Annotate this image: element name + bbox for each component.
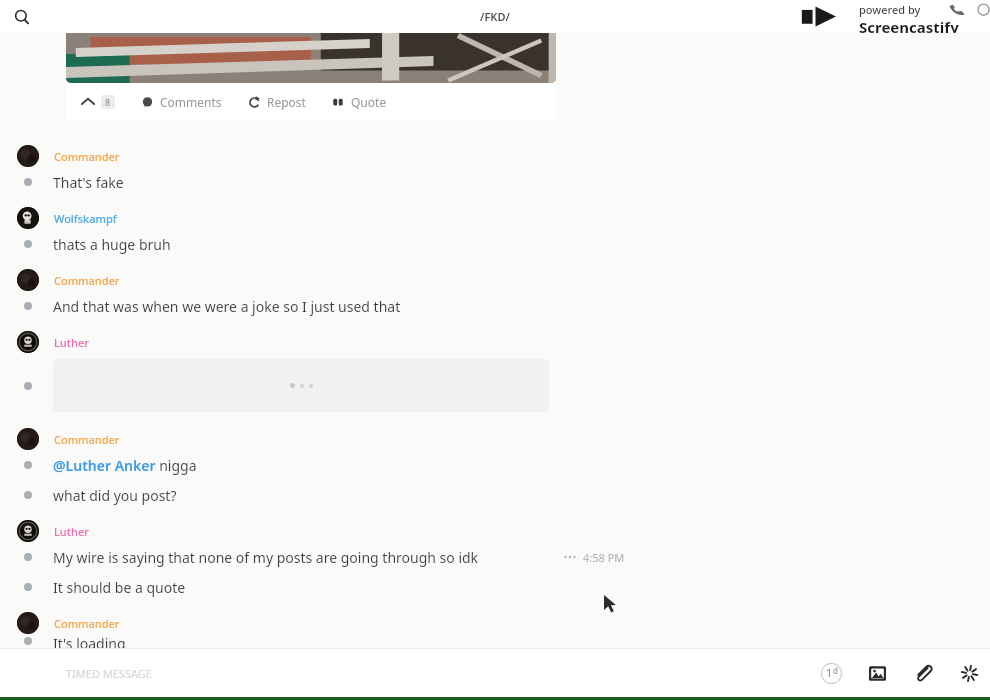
button[interactable]: Commander — [0, 145, 990, 167]
button[interactable]: Luther — [0, 331, 990, 353]
button[interactable]: Attach file — [908, 658, 938, 688]
button[interactable]: It should be a quote — [0, 572, 990, 602]
button[interactable] — [0, 353, 990, 418]
staticText: @Luther Anker nigga — [53, 456, 197, 475]
button[interactable]: That's fake — [0, 167, 990, 197]
staticText: Quote — [351, 94, 387, 110]
button[interactable]: Luther — [0, 520, 990, 542]
staticText: My wire is saying that none of my posts … — [53, 548, 479, 567]
staticText: 1 — [826, 665, 833, 680]
button[interactable]: Quote — [330, 90, 389, 114]
button[interactable]: Commander — [0, 269, 990, 291]
button[interactable]: Add image — [862, 658, 892, 688]
button[interactable]: Commander — [0, 428, 990, 450]
button[interactable]: Wolfskampf — [0, 207, 990, 229]
staticText: Screencastify — [859, 17, 959, 33]
staticText: Wolfskampf — [54, 211, 117, 226]
staticText: what did you post? — [53, 486, 177, 505]
staticText: Commander — [54, 149, 120, 164]
button[interactable]: Repost — [246, 90, 308, 114]
button[interactable]: Upvote — [78, 90, 117, 114]
button[interactable]: @Luther Anker nigga — [0, 450, 990, 480]
button[interactable]: Message timer, 1 day — [814, 656, 848, 690]
button[interactable]: TIMED MESSAGE — [66, 649, 814, 697]
button[interactable]: thats a huge bruh — [0, 229, 990, 259]
staticText: It's loading — [53, 634, 126, 648]
button[interactable]: More actions — [954, 658, 984, 688]
button[interactable]: More options — [561, 548, 579, 566]
staticText: Commander — [54, 432, 120, 447]
staticText: TIMED MESSAGE — [66, 666, 152, 681]
button[interactable]: what did you post? — [0, 480, 990, 510]
staticText: thats a huge bruh — [53, 235, 171, 254]
staticText: And that was when we were a joke so I ju… — [53, 297, 401, 316]
button[interactable]: It's loading — [0, 634, 990, 648]
staticText: Commander — [54, 273, 120, 288]
button[interactable]: Commander — [0, 612, 990, 634]
staticText: d — [833, 665, 838, 676]
other: Upvote — [80, 94, 96, 110]
staticText: powered by — [859, 2, 921, 17]
button[interactable]: And that was when we were a joke so I ju… — [0, 291, 990, 321]
staticText: It should be a quote — [53, 578, 186, 597]
staticText: 4:58 PM — [583, 550, 625, 565]
button[interactable]: My wire is saying that none of my posts … — [0, 542, 990, 572]
staticText: /FKD/ — [480, 9, 510, 24]
staticText: Luther — [54, 335, 89, 350]
button[interactable]: Comments — [139, 90, 224, 114]
button[interactable]: Search — [8, 3, 36, 31]
staticText: 8 — [105, 96, 111, 108]
staticText: Comments — [160, 94, 222, 110]
staticText: Repost — [267, 94, 306, 110]
staticText: Commander — [54, 616, 120, 631]
staticText: That's fake — [53, 173, 124, 192]
staticText: Luther — [54, 524, 89, 539]
